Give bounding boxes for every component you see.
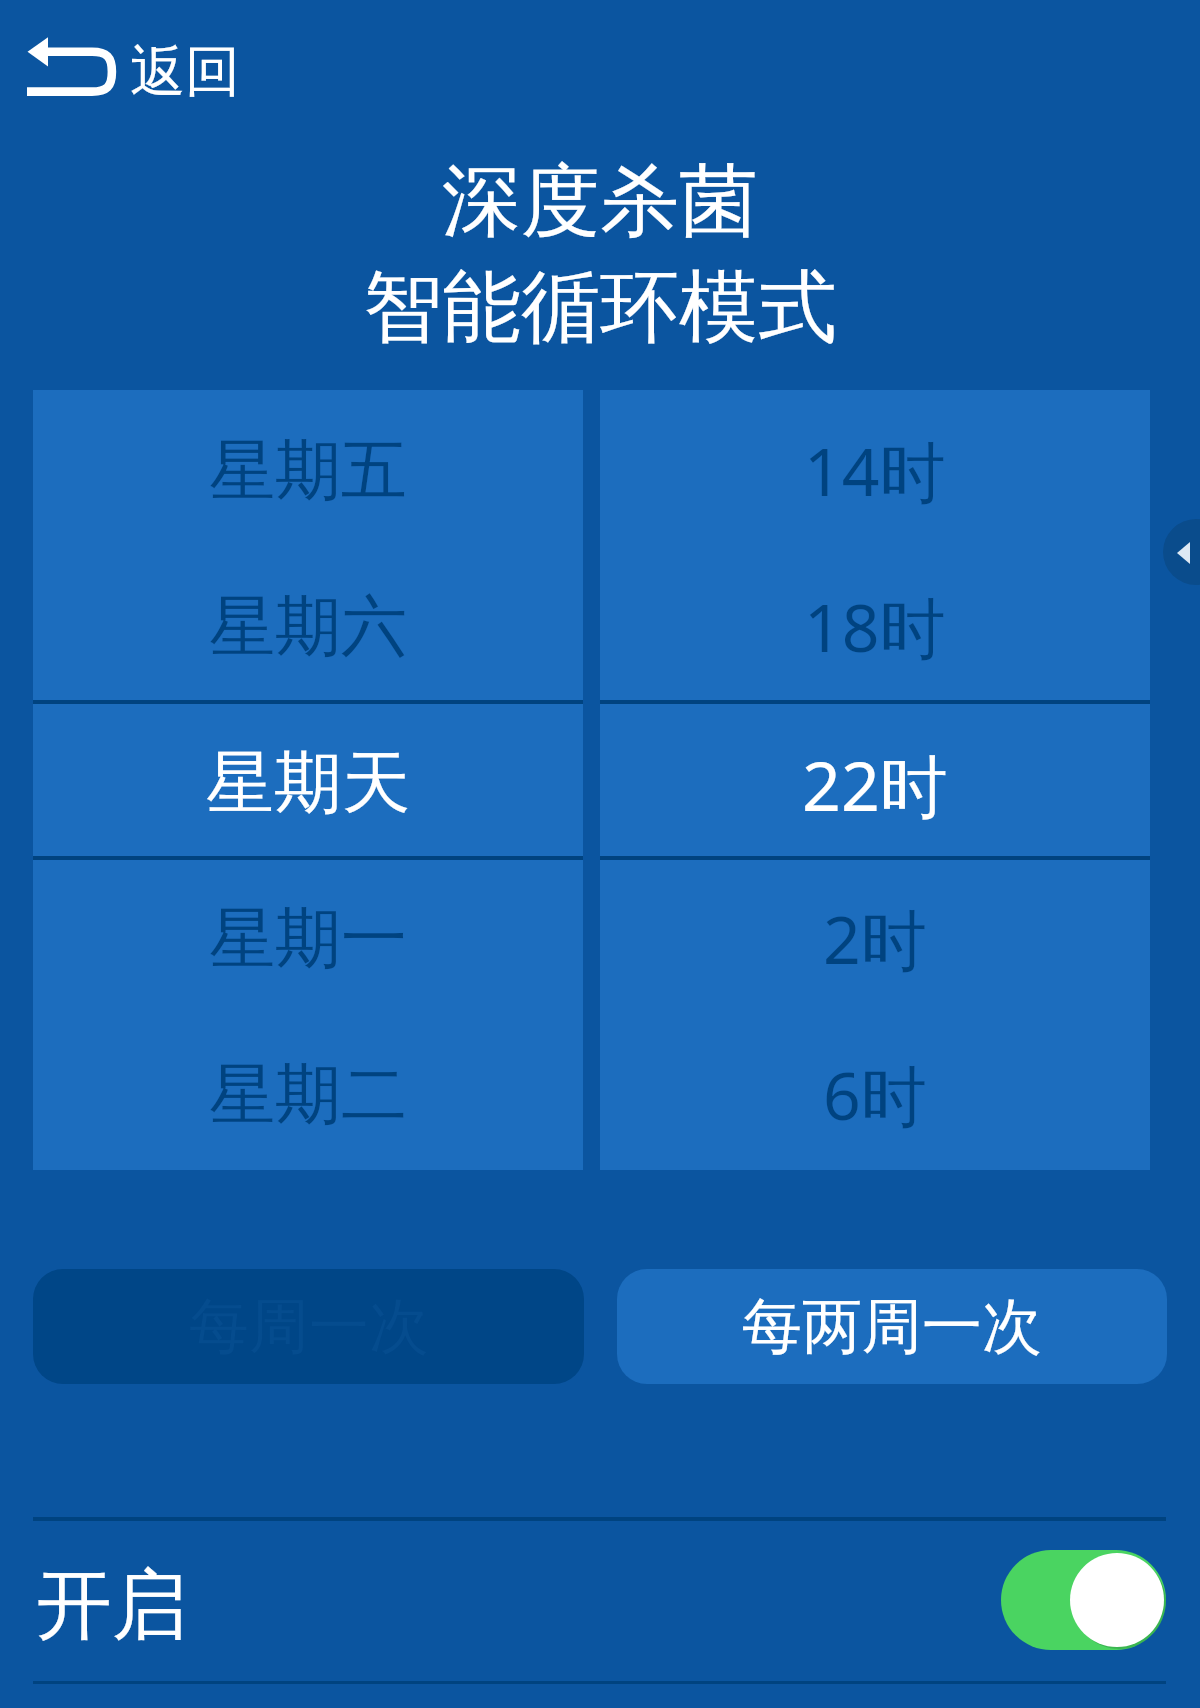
staticText: 深度杀菌 智能循环模式 bbox=[0, 152, 1200, 358]
other: Back bbox=[27, 36, 117, 98]
staticText: 6时 bbox=[823, 1049, 927, 1139]
button[interactable]: 14时 bbox=[600, 390, 1150, 546]
staticText: 22时 bbox=[802, 738, 948, 831]
staticText: 星期六 bbox=[209, 585, 407, 668]
staticText: 星期天 bbox=[206, 741, 410, 827]
button[interactable]: 18时 bbox=[600, 546, 1150, 702]
button[interactable]: 6时 bbox=[600, 1014, 1150, 1170]
staticText: 18时 bbox=[804, 581, 946, 671]
staticText: 返回 bbox=[130, 37, 240, 106]
staticText: 14时 bbox=[804, 425, 946, 515]
button[interactable]: 星期二 bbox=[33, 1014, 583, 1170]
staticText: 每两周一次 bbox=[742, 1289, 1042, 1365]
staticText: 开启 bbox=[36, 1558, 188, 1654]
button[interactable]: Previous bbox=[1163, 519, 1200, 585]
button[interactable]: 每两周一次 bbox=[617, 1269, 1167, 1384]
button[interactable]: 每周一次 bbox=[33, 1269, 584, 1384]
staticText: 星期五 bbox=[209, 429, 407, 512]
staticText: 星期一 bbox=[209, 897, 407, 980]
button[interactable]: Back bbox=[13, 13, 258, 119]
button[interactable]: 星期六 bbox=[33, 546, 583, 702]
button[interactable]: 开启 bbox=[0, 1521, 1200, 1681]
button[interactable]: 星期一 bbox=[33, 858, 583, 1014]
button[interactable]: 星期五 bbox=[33, 390, 583, 546]
button[interactable]: 2时 bbox=[600, 858, 1150, 1014]
staticText: 2时 bbox=[823, 893, 927, 983]
staticText: 星期二 bbox=[209, 1053, 407, 1136]
button[interactable]: 22时 bbox=[600, 702, 1150, 858]
button[interactable]: 星期天 bbox=[33, 702, 583, 858]
